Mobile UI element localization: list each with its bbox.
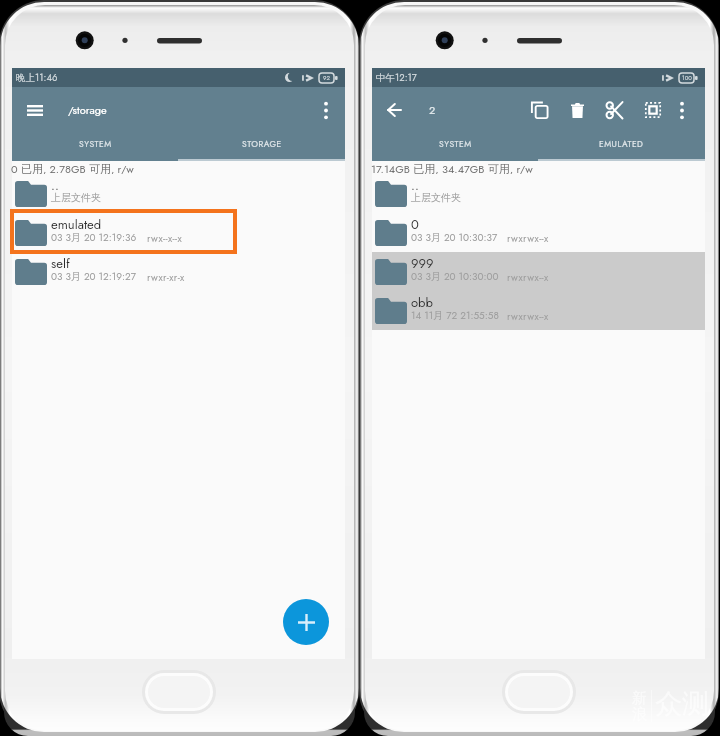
staticText: 0 已用, 2.78GB 可用, r/w <box>11 161 134 174</box>
staticText: EMULATED <box>599 138 644 150</box>
button[interactable]: .. <box>12 174 345 213</box>
button[interactable]: Add <box>283 599 329 645</box>
staticText: 上层文件夹 <box>411 191 461 204</box>
button[interactable]: More options <box>669 97 695 123</box>
staticText: 中午12:17 <box>376 71 417 85</box>
button[interactable]: Copy <box>529 99 551 121</box>
button[interactable]: Select all <box>642 99 664 121</box>
staticText: 999 <box>411 254 434 273</box>
staticText: 03 3月 20 12:19:36 <box>51 230 137 244</box>
button[interactable]: STORAGE <box>178 132 345 161</box>
staticText: 03 3月 20 10:30:37 <box>411 230 498 244</box>
button[interactable]: obb <box>372 291 705 330</box>
staticText: /storage <box>68 102 107 118</box>
staticText: 100 <box>682 74 692 83</box>
button[interactable]: More options <box>313 97 339 123</box>
button[interactable]: self <box>12 252 345 291</box>
button[interactable]: 0 <box>372 213 705 252</box>
staticText: rwxrwx--x <box>507 270 549 284</box>
staticText: emulated <box>51 215 102 234</box>
button[interactable]: .. <box>372 174 705 213</box>
staticText: 2 <box>429 102 436 118</box>
button[interactable]: EMULATED <box>538 132 705 161</box>
button[interactable]: Cut <box>603 99 625 121</box>
staticText: .. <box>51 176 59 195</box>
staticText: 92 <box>323 74 330 83</box>
staticText: 14 11月 72 21:55:58 <box>411 308 499 322</box>
staticText: SYSTEM <box>439 138 472 150</box>
staticText: rwx--x--x <box>147 231 182 245</box>
staticText: SYSTEM <box>79 138 112 150</box>
button[interactable]: Back <box>381 97 407 123</box>
button[interactable]: SYSTEM <box>12 132 178 161</box>
button[interactable]: 999 <box>372 252 705 291</box>
button[interactable]: Menu <box>23 98 47 122</box>
staticText: STORAGE <box>242 138 282 150</box>
staticText: 上层文件夹 <box>51 191 101 204</box>
staticText: obb <box>411 293 433 312</box>
staticText: 03 3月 20 12:19:27 <box>51 269 136 283</box>
staticText: 众测 <box>655 687 709 721</box>
staticText: rwxr-xr-x <box>147 270 185 284</box>
button[interactable]: SYSTEM <box>372 132 538 161</box>
button[interactable]: emulated <box>12 213 345 252</box>
button[interactable]: Delete <box>566 99 588 121</box>
staticText: self <box>51 254 70 273</box>
staticText: rwxrwx--x <box>507 309 549 323</box>
staticText: 03 3月 20 10:30:00 <box>411 269 499 283</box>
staticText: 17.14GB 已用, 34.47GB 可用, r/w <box>371 161 533 174</box>
staticText: 0 <box>411 215 419 234</box>
staticText: .. <box>411 176 419 195</box>
staticText: 晚上11:46 <box>16 71 58 85</box>
staticText: rwxrwx--x <box>507 231 549 245</box>
